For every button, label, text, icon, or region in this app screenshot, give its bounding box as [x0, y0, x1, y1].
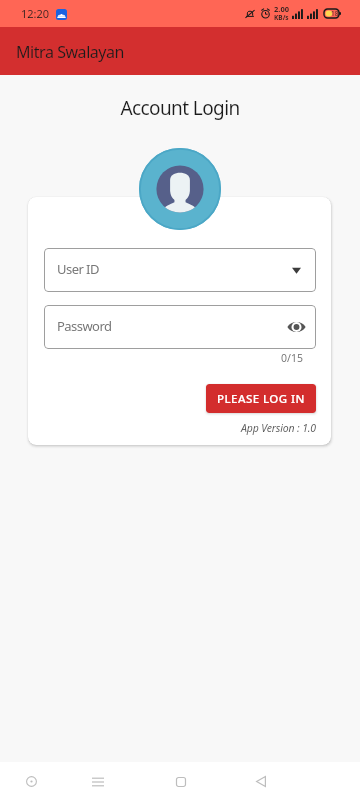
staticText: KB/s — [274, 13, 289, 22]
button[interactable]: Recents — [162, 763, 199, 800]
button[interactable]: Back — [242, 763, 279, 800]
staticText: PLEASE LOG IN — [217, 391, 305, 407]
button[interactable]: User ID — [44, 248, 316, 292]
button[interactable]: Assistant — [13, 763, 50, 800]
staticText: 12:20 — [21, 6, 50, 21]
other: Show password — [287, 320, 306, 334]
staticText: 2.00 — [274, 4, 289, 14]
button[interactable]: Password — [44, 305, 316, 349]
button[interactable]: Menu — [79, 763, 116, 800]
staticText: 18 — [331, 9, 339, 18]
staticText: 0/15 — [44, 351, 303, 365]
staticText: Account Login — [0, 95, 360, 121]
button[interactable]: PLEASE LOG IN — [206, 384, 316, 413]
staticText: User ID — [57, 260, 99, 278]
button[interactable]: Mitra Swalayan — [0, 27, 360, 75]
staticText: App Version : 1.0 — [44, 421, 316, 435]
staticText: Mitra Swalayan — [16, 41, 125, 63]
other: Open dropdown — [292, 267, 301, 274]
staticText: Password — [57, 317, 112, 335]
